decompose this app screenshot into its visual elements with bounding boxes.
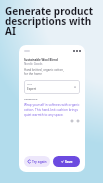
staticText: Sustainable Wool Blend bbox=[24, 58, 58, 62]
button[interactable]: Try again bbox=[24, 156, 50, 167]
button[interactable]: Tone bbox=[24, 80, 80, 94]
staticText: Save bbox=[65, 160, 73, 164]
staticText: Tone bbox=[27, 83, 32, 86]
staticText: Nordic Goods bbox=[24, 62, 43, 66]
staticText: Wrap yourself in softness with organic c… bbox=[24, 103, 80, 117]
other: Expand tone bbox=[73, 85, 77, 89]
button[interactable]: Share bbox=[76, 119, 80, 123]
staticText: GENERATED bbox=[24, 98, 38, 101]
staticText: Hand knitted, organic cotton, for the ho… bbox=[24, 68, 64, 76]
button[interactable]: Save bbox=[53, 156, 80, 167]
staticText: Generate product descriptions with AI bbox=[5, 4, 101, 38]
staticText: Try again bbox=[32, 160, 47, 164]
button[interactable]: Copy bbox=[70, 119, 74, 123]
staticText: Expert bbox=[27, 87, 37, 91]
